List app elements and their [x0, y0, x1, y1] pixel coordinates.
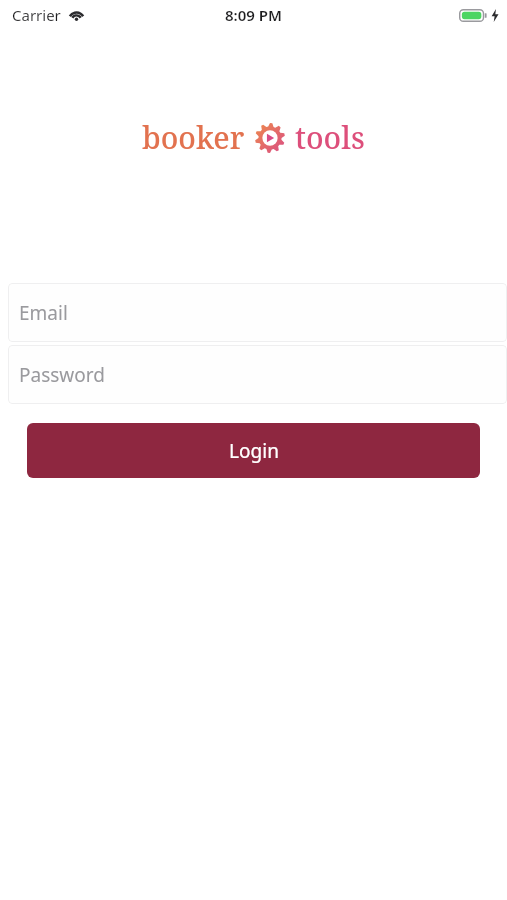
- button[interactable]: Login: [27, 423, 480, 478]
- staticText: booker: [142, 117, 245, 158]
- staticText: 8:09 PM: [225, 5, 282, 25]
- staticText: Carrier: [12, 5, 61, 25]
- button[interactable]: Email input field: [8, 283, 507, 342]
- staticText: Login: [229, 438, 279, 464]
- staticText: Email: [19, 300, 68, 326]
- staticText: tools: [295, 117, 365, 158]
- staticText: Password: [19, 362, 105, 388]
- button[interactable]: Password input field: [8, 345, 507, 404]
